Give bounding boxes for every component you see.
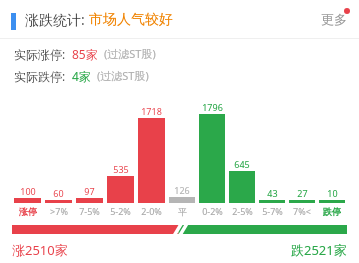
staticText: 43 (267, 187, 278, 199)
staticText: 2-0% (141, 205, 162, 217)
staticText: 5-7% (262, 205, 283, 217)
staticText: 126 (174, 184, 190, 196)
staticText: 跌停 (323, 206, 341, 217)
staticText: 4家 (72, 68, 91, 84)
staticText: (过滤ST股) (104, 46, 156, 61)
staticText: 85家 (72, 46, 98, 62)
staticText: 实际跌停: (14, 68, 66, 84)
staticText: 涨跌统计: (25, 10, 89, 29)
staticText: 7%< (293, 205, 311, 217)
staticText: 实际涨停: (14, 46, 66, 62)
staticText: 535 (113, 163, 129, 175)
staticText: 27 (297, 187, 308, 199)
staticText: 跌2521家 (291, 241, 347, 259)
staticText: 2-5% (232, 205, 253, 217)
staticText: 100 (20, 185, 36, 197)
staticText: 平 (178, 206, 187, 217)
staticText: 涨2510家 (12, 241, 68, 259)
staticText: 1718 (141, 105, 162, 117)
staticText: 0-2% (202, 205, 223, 217)
staticText: 97 (84, 185, 95, 197)
button[interactable]: 更多 (317, 7, 351, 31)
staticText: 7-5% (79, 205, 100, 217)
staticText: 60 (53, 187, 64, 199)
button[interactable]: 涨跌统计: (0, 0, 359, 38)
staticText: 10 (327, 187, 338, 199)
staticText: 更多 (321, 11, 347, 27)
staticText: 5-2% (110, 205, 131, 217)
staticText: >7% (50, 205, 68, 217)
staticText: (过滤ST股) (97, 68, 149, 83)
staticText: 涨停 (19, 206, 37, 217)
staticText: 1796 (202, 101, 223, 113)
staticText: 645 (234, 158, 250, 170)
staticText: 市场人气较好 (89, 11, 173, 29)
